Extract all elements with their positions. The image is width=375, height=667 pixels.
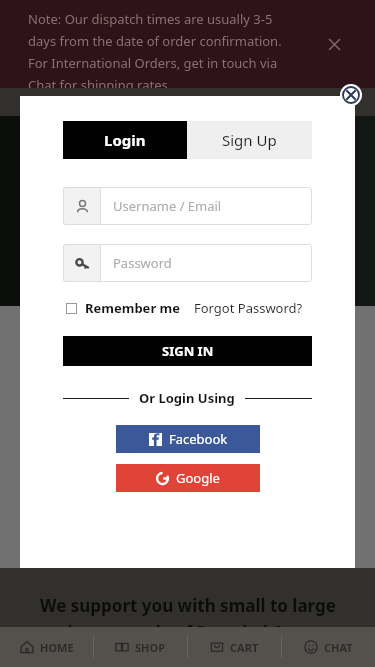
button[interactable]: Username / Email [63, 187, 312, 225]
staticText: Login [104, 130, 146, 150]
button[interactable]: Password [63, 244, 312, 282]
button[interactable]: Google [116, 464, 260, 492]
button[interactable]: Dismiss notice [319, 29, 349, 59]
staticText: CHAT [324, 640, 353, 655]
staticText: Sign Up [222, 130, 277, 150]
button[interactable]: SHOP [94, 627, 187, 667]
button[interactable]: Login [63, 121, 187, 159]
staticText: SIGN IN [162, 342, 214, 360]
staticText: Password [113, 254, 172, 272]
button[interactable]: Close [340, 84, 362, 106]
staticText: We support you with small to large [40, 594, 336, 617]
staticText: SHOP [135, 640, 166, 655]
staticText: CART [230, 640, 259, 655]
button[interactable]: HOME [0, 627, 93, 667]
staticText: Or Login Using [139, 389, 235, 407]
button[interactable]: SIGN IN [63, 336, 312, 366]
staticText: Note: Our dispatch times are usually 3-5 [28, 10, 273, 28]
button[interactable]: Sign Up [187, 121, 312, 159]
staticText: Remember me [85, 299, 181, 317]
button[interactable]: Forgot Password? [194, 299, 303, 317]
staticText: Facebook [169, 430, 228, 448]
button[interactable]: CHAT [282, 627, 375, 667]
staticText: Google [176, 469, 220, 487]
button[interactable]: CART [188, 627, 281, 667]
button[interactable]: Remember me [66, 299, 181, 317]
staticText: HOME [40, 640, 74, 655]
staticText: For International Orders, get in touch v… [28, 54, 278, 72]
staticText: Username / Email [113, 197, 222, 215]
button[interactable]: Facebook [116, 425, 260, 453]
staticText: Chat for shipping rates. [28, 76, 172, 88]
staticText: days from the date of order confirmation… [28, 32, 282, 50]
staticText: Forgot Password? [194, 299, 303, 317]
staticText: volume supply of Branded Aroma [47, 621, 329, 644]
